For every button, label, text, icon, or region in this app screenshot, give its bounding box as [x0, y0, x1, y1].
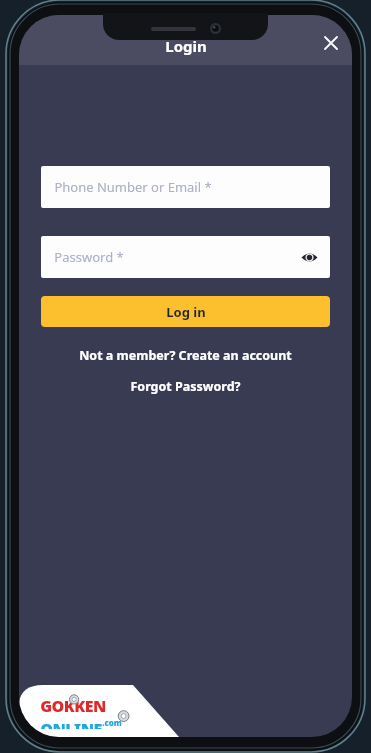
button[interactable]: Close: [316, 28, 346, 58]
button[interactable]: Forgot Password?: [41, 378, 330, 395]
staticText: Password *: [54, 248, 124, 266]
staticText: ONLINE: [40, 718, 102, 729]
button[interactable]: Password *: [41, 236, 330, 278]
button[interactable]: Show password: [296, 244, 322, 270]
button[interactable]: Not a member? Create an account: [41, 347, 330, 364]
staticText: Forgot Password?: [130, 378, 241, 395]
button[interactable]: Log in: [41, 296, 330, 327]
staticText: Login: [165, 36, 207, 56]
button[interactable]: Phone Number or Email *: [41, 166, 330, 208]
staticText: Log in: [166, 303, 206, 321]
staticText: Phone Number or Email *: [54, 178, 212, 196]
staticText: GOKKEN: [40, 695, 106, 717]
staticText: .com: [102, 717, 122, 728]
staticText: Not a member? Create an account: [79, 347, 292, 364]
